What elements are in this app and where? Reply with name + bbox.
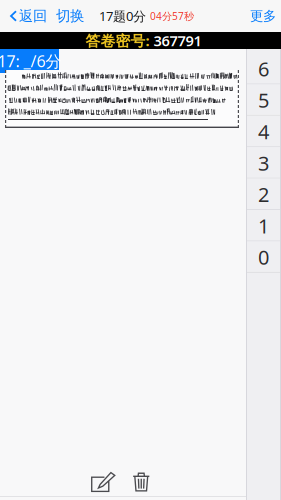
button[interactable]: 切换 xyxy=(51,0,89,31)
button[interactable]: 更多 xyxy=(243,0,281,31)
button[interactable]: 17: _/6分 xyxy=(0,49,59,73)
button[interactable]: 删除 xyxy=(129,468,153,496)
staticText: 4 xyxy=(258,118,269,145)
staticText: 17题0分 xyxy=(99,7,146,25)
button[interactable]: 4 xyxy=(247,116,280,147)
staticText: 5 xyxy=(258,87,269,113)
staticText: 答卷密号: xyxy=(85,31,149,50)
button[interactable]: 5 xyxy=(247,84,280,116)
button[interactable]: 2 xyxy=(247,179,280,210)
staticText: 1 xyxy=(258,212,269,239)
staticText: 2 xyxy=(258,181,269,208)
staticText: 17: _/6分 xyxy=(0,50,61,72)
button[interactable]: 1 xyxy=(247,210,280,241)
staticText: 返回 xyxy=(19,7,47,25)
button[interactable]: 0 xyxy=(247,241,280,273)
button[interactable]: 3 xyxy=(247,147,280,179)
staticText: 367791 xyxy=(149,31,201,50)
staticText: 04分57秒 xyxy=(150,9,194,23)
button[interactable]: 标注 xyxy=(87,468,119,496)
staticText: 切换 xyxy=(56,7,84,25)
staticText: 0 xyxy=(258,244,269,270)
staticText: 更多 xyxy=(250,8,276,24)
button[interactable]: 返回 xyxy=(0,0,50,31)
button[interactable]: 6 xyxy=(247,53,280,84)
staticText: 3 xyxy=(258,150,269,176)
staticText: 6 xyxy=(258,55,269,82)
